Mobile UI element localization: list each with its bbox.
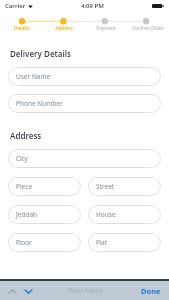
staticText: House <box>96 210 116 219</box>
button[interactable]: User Name <box>8 67 161 86</box>
button[interactable]: Phone Number <box>8 94 161 113</box>
button[interactable]: Piece <box>8 177 81 196</box>
staticText: 4:09 PM <box>81 2 104 10</box>
staticText: Address <box>55 25 73 31</box>
button[interactable]: Previous field <box>4 283 20 299</box>
button[interactable]: Floor <box>8 233 81 252</box>
staticText: Floor <box>16 238 32 247</box>
staticText: Address <box>10 130 42 141</box>
staticText: Carrier <box>5 2 26 10</box>
staticText: Payment <box>96 25 116 31</box>
button[interactable]: City <box>8 149 161 168</box>
button[interactable]: Street <box>88 177 161 196</box>
staticText: Done <box>141 286 161 296</box>
staticText: Details <box>14 25 29 31</box>
button[interactable]: House <box>88 205 161 224</box>
button[interactable]: Jeddah <box>8 205 81 224</box>
staticText: Phone Number <box>16 99 63 108</box>
staticText: Street <box>96 182 115 191</box>
staticText: Jeddah <box>16 210 38 219</box>
button[interactable]: Done <box>137 284 165 298</box>
button[interactable]: Flat <box>88 233 161 252</box>
staticText: Door Name <box>68 286 104 295</box>
button[interactable]: Next field <box>20 283 36 299</box>
staticText: Confirm Order <box>132 25 164 31</box>
staticText: User Name <box>16 72 51 81</box>
staticText: Piece <box>16 182 33 191</box>
staticText: Flat <box>96 238 108 247</box>
staticText: City <box>16 154 28 163</box>
staticText: Delivery Details <box>10 48 71 59</box>
